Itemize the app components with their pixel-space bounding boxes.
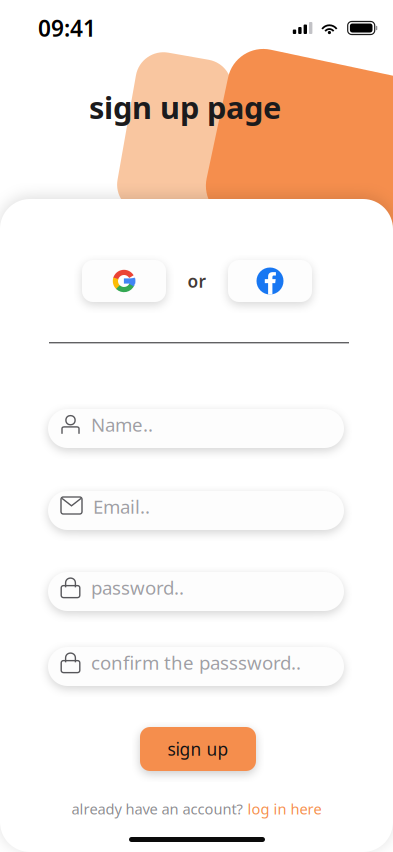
- button[interactable]: sign up: [140, 727, 256, 771]
- button[interactable]: Sign up with Google: [82, 260, 166, 302]
- button[interactable]: Email..: [48, 491, 344, 530]
- staticText: Email..: [93, 494, 150, 519]
- staticText: sign up: [167, 737, 228, 760]
- button[interactable]: confirm the passsword..: [48, 647, 344, 686]
- staticText: log in here: [247, 799, 321, 818]
- staticText: confirm the passsword..: [91, 650, 301, 675]
- button[interactable]: Name..: [48, 409, 344, 448]
- button[interactable]: log in here: [247, 799, 321, 818]
- staticText: or: [187, 269, 206, 292]
- staticText: password..: [91, 575, 184, 600]
- staticText: Name..: [91, 412, 153, 437]
- button[interactable]: password..: [48, 572, 344, 611]
- staticText: already have an account?: [71, 799, 242, 818]
- button[interactable]: Sign up with Facebook: [228, 260, 312, 302]
- staticText: 09:41: [38, 13, 96, 43]
- staticText: sign up page: [89, 87, 281, 127]
